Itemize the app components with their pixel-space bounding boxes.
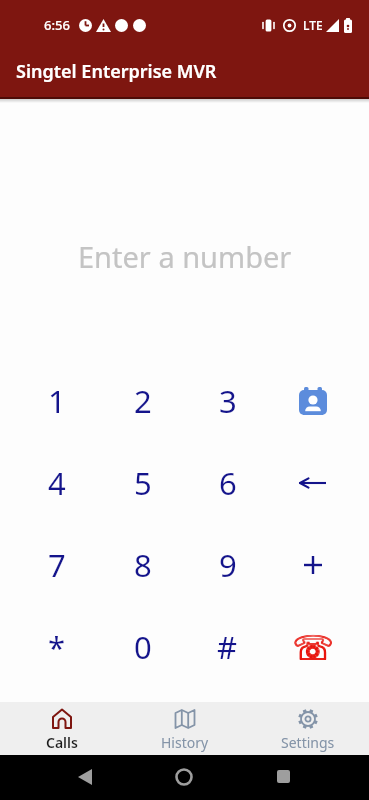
button[interactable]: [270, 442, 355, 524]
button[interactable]: Calls: [0, 702, 123, 755]
staticText: 3: [219, 380, 237, 422]
button[interactable]: 9: [185, 524, 270, 606]
staticText: ☏: [293, 628, 335, 666]
button[interactable]: #: [185, 606, 270, 688]
button[interactable]: [270, 360, 355, 442]
staticText: #: [217, 626, 238, 668]
staticText: Singtel Enterprise MVR: [16, 59, 217, 84]
button[interactable]: 5: [100, 442, 185, 524]
button[interactable]: 0: [100, 606, 185, 688]
button[interactable]: ☏: [270, 606, 355, 688]
button[interactable]: [175, 768, 193, 786]
staticText: History: [161, 733, 209, 752]
staticText: Calls: [46, 733, 78, 752]
button[interactable]: 3: [185, 360, 270, 442]
button[interactable]: Settings: [246, 702, 369, 755]
staticText: *: [48, 626, 66, 668]
button[interactable]: [277, 770, 290, 783]
button[interactable]: 7: [14, 524, 100, 606]
staticText: ☏: [293, 629, 335, 667]
button[interactable]: [270, 524, 355, 606]
staticText: ☏: [292, 628, 334, 666]
staticText: 7: [48, 544, 66, 586]
staticText: 9: [219, 544, 237, 586]
staticText: Settings: [281, 733, 335, 752]
button[interactable]: 8: [100, 524, 185, 606]
staticText: 6:56: [44, 16, 70, 34]
staticText: 4: [48, 462, 66, 504]
button[interactable]: *: [14, 606, 100, 688]
staticText: 5: [134, 462, 152, 504]
staticText: 0: [134, 626, 152, 668]
staticText: 6: [219, 462, 237, 504]
button[interactable]: [78, 769, 92, 785]
staticText: ☏: [292, 629, 334, 667]
staticText: Enter a number: [78, 237, 292, 276]
button[interactable]: 2: [100, 360, 185, 442]
button[interactable]: 6: [185, 442, 270, 524]
staticText: 8: [134, 544, 152, 586]
button[interactable]: Enter a number: [0, 237, 369, 276]
button[interactable]: History: [123, 702, 246, 755]
staticText: 1: [48, 380, 66, 422]
button[interactable]: 4: [14, 442, 100, 524]
staticText: 2: [134, 380, 152, 422]
button[interactable]: 1: [14, 360, 100, 442]
staticText: LTE: [303, 17, 323, 33]
